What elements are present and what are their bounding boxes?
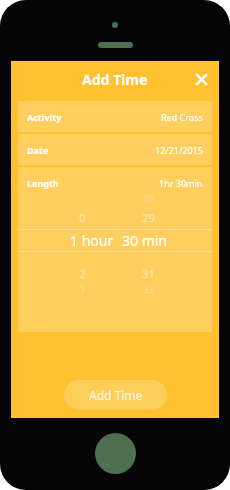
staticText: 3 — [79, 283, 85, 295]
staticText: Activity — [27, 111, 62, 123]
staticText: Red Cross — [161, 111, 203, 123]
staticText: 0 — [79, 210, 86, 225]
staticText: Add Time — [89, 387, 143, 403]
button[interactable]: 1 hour — [18, 230, 212, 251]
staticText: 29 — [142, 210, 155, 225]
staticText: Length — [27, 177, 59, 189]
button[interactable]: Date — [18, 134, 212, 165]
staticText: 27 — [143, 176, 153, 187]
staticText: 31 — [142, 266, 155, 281]
staticText: 32 — [143, 283, 154, 295]
staticText: 30 min — [122, 231, 168, 250]
staticText: Date — [27, 144, 49, 156]
button[interactable]: Add Time — [64, 380, 167, 410]
staticText: Add Time — [82, 70, 148, 89]
button[interactable]: Home — [95, 433, 136, 474]
button[interactable]: Activity — [18, 101, 212, 132]
button[interactable]: Close — [188, 66, 214, 92]
button[interactable]: Length — [18, 167, 212, 198]
staticText: 12/21/2015 — [155, 144, 203, 156]
staticText: 1 hour — [70, 231, 114, 250]
staticText: 2 — [79, 266, 86, 281]
staticText: 1hr 30min — [159, 177, 203, 189]
staticText: 28 — [143, 192, 154, 204]
